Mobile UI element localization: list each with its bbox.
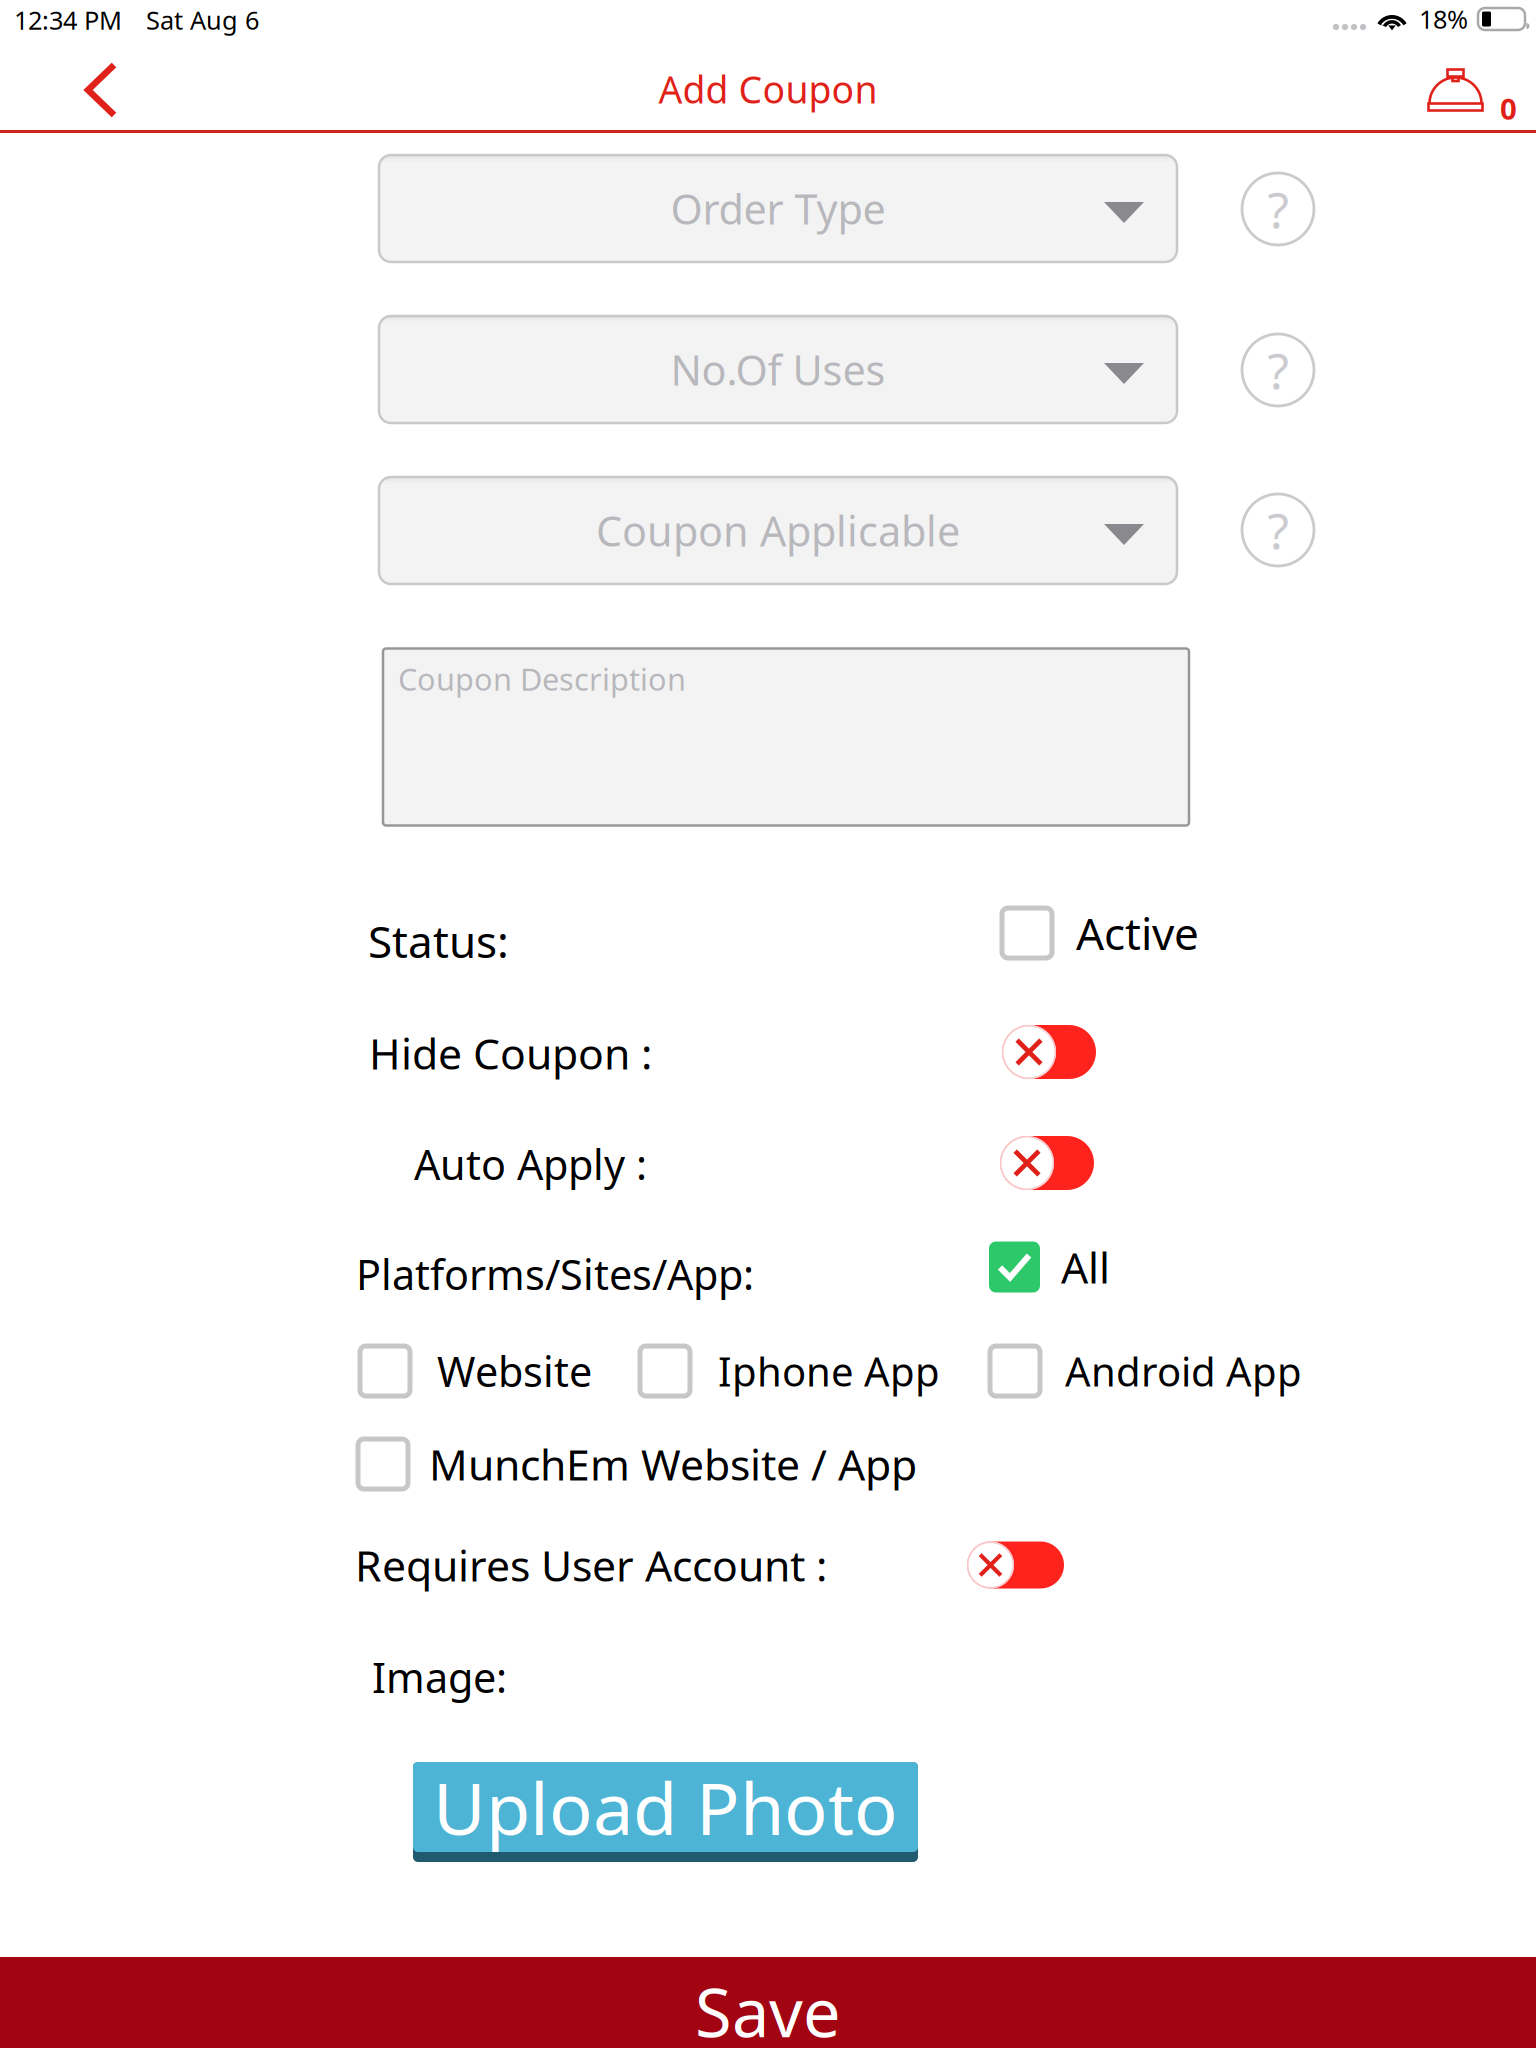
button[interactable]: All <box>989 1238 1110 1296</box>
staticText: Iphone App <box>718 1344 940 1397</box>
staticText: Auto Apply : <box>414 1137 647 1191</box>
staticText: MunchEm Website / App <box>429 1436 917 1492</box>
staticText: Sat Aug 6 <box>146 3 259 37</box>
staticText: Requires User Account : <box>355 1537 827 1593</box>
button[interactable]: No.Of Uses <box>379 316 1177 423</box>
button[interactable]: Help <box>1242 494 1313 565</box>
staticText: 18% <box>1419 2 1468 36</box>
staticText: Image: <box>372 1650 507 1704</box>
button[interactable]: Coupon Applicable <box>379 477 1177 584</box>
button[interactable]: Upload Photo <box>413 1762 918 1862</box>
staticText: Save <box>695 1967 841 2048</box>
staticText: 0 <box>1500 89 1517 128</box>
button[interactable]: Android App <box>990 1342 1302 1400</box>
button[interactable]: Toggle <box>1002 1025 1096 1079</box>
button[interactable]: Website <box>360 1342 592 1400</box>
staticText: ? <box>1267 337 1288 403</box>
staticText: Website <box>437 1344 592 1398</box>
button[interactable]: Orders <box>1426 48 1526 130</box>
staticText: All <box>1061 1239 1110 1295</box>
button[interactable]: Save <box>0 1957 1536 2048</box>
staticText: Add Coupon <box>658 64 877 114</box>
staticText: Platforms/Sites/App: <box>356 1247 754 1301</box>
button[interactable]: Help <box>1242 334 1313 405</box>
staticText: Status: <box>368 912 509 970</box>
staticText: No.Of Uses <box>670 342 885 397</box>
button[interactable]: Help <box>1242 173 1313 244</box>
button[interactable]: Back <box>46 49 156 131</box>
button[interactable]: Active <box>1002 904 1199 962</box>
staticText: Upload Photo <box>433 1759 898 1855</box>
staticText: Android App <box>1065 1344 1302 1397</box>
staticText: Order Type <box>670 181 885 236</box>
button[interactable]: MunchEm Website / App <box>358 1435 917 1493</box>
staticText: Coupon Applicable <box>596 503 960 558</box>
staticText: ? <box>1267 176 1288 242</box>
button[interactable]: Toggle <box>1000 1136 1094 1190</box>
button[interactable]: Iphone App <box>640 1342 940 1400</box>
staticText: Hide Coupon : <box>369 1025 652 1081</box>
button[interactable]: Toggle <box>967 1541 1064 1588</box>
staticText: 12:34 PM <box>14 3 122 37</box>
staticText: ? <box>1267 497 1288 563</box>
button[interactable]: Order Type <box>379 155 1177 262</box>
staticText: Coupon Description <box>398 658 686 699</box>
staticText: Active <box>1076 904 1199 962</box>
